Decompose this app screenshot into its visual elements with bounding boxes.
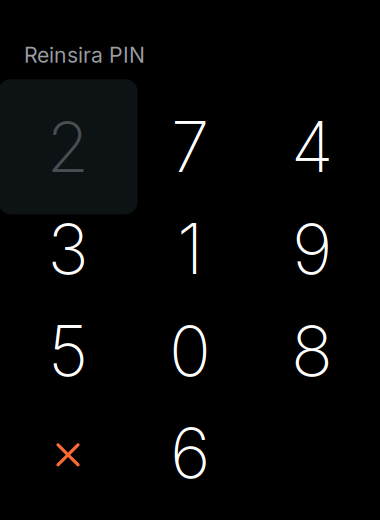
staticText: Reinsira PIN: [24, 42, 145, 68]
staticText: 6: [170, 411, 210, 495]
staticText: 2: [46, 105, 89, 189]
staticText: 9: [292, 207, 332, 291]
button[interactable]: 0: [129, 300, 251, 402]
button[interactable]: 7: [129, 96, 251, 198]
button[interactable]: 6: [129, 402, 251, 504]
button[interactable]: 3: [7, 198, 129, 300]
button[interactable]: 5: [7, 300, 129, 402]
button[interactable]: 4: [251, 96, 373, 198]
button[interactable]: 8: [251, 300, 373, 402]
staticText: 4: [291, 105, 333, 189]
staticText: 0: [169, 309, 211, 393]
staticText: 1: [177, 207, 203, 291]
button[interactable]: Delete: [7, 402, 129, 504]
button[interactable]: 2: [7, 96, 129, 198]
staticText: 3: [47, 207, 88, 291]
button[interactable]: 9: [251, 198, 373, 300]
button[interactable]: 1: [129, 198, 251, 300]
staticText: 8: [291, 309, 333, 393]
staticText: 5: [48, 309, 88, 393]
staticText: 7: [171, 105, 209, 189]
